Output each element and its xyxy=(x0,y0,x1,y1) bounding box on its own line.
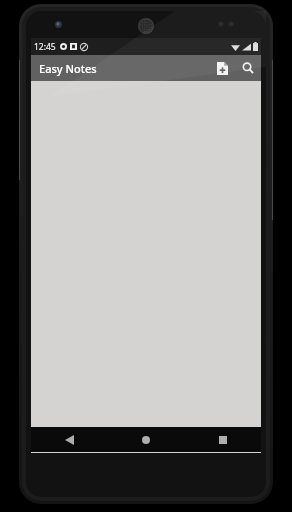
button[interactable]: Search xyxy=(235,55,261,81)
button[interactable]: Back xyxy=(31,427,107,452)
staticText: 12:45 xyxy=(34,41,56,53)
staticText: Easy Notes xyxy=(39,61,97,76)
button[interactable]: New note xyxy=(209,55,235,81)
button[interactable]: Recent apps xyxy=(184,427,261,452)
button[interactable]: Home xyxy=(107,427,184,452)
